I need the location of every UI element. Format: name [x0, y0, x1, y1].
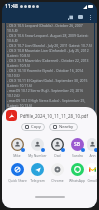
staticText: 10.6.8) — [7, 38, 18, 43]
staticText: 11:48 — [5, 3, 18, 10]
staticText: - OS X 10.11 El Capitan (Gala) - Septemb… — [7, 78, 88, 83]
button[interactable]: WhatsApp — [67, 163, 87, 182]
staticText: Telegram — [30, 178, 45, 182]
staticText: Mike — [13, 153, 21, 157]
button[interactable]: Chrome — [47, 163, 67, 182]
button[interactable]: Nearby — [49, 123, 78, 131]
staticText: Sandra — [72, 153, 83, 157]
button[interactable]: Gmail — [87, 163, 97, 182]
button[interactable]: Quick Share — [7, 163, 27, 182]
staticText: - OS X 10.7 Lion (Barolo) - July 20, 201… — [7, 43, 92, 48]
button[interactable]: Ann — [87, 137, 97, 157]
staticText: Copy — [31, 124, 41, 130]
staticText: Gmail — [87, 178, 97, 182]
staticText: - macOS 10.14 Mojave (Liberty) - Septemb… — [7, 108, 91, 112]
staticText: (Latest: 10.13.6) — [7, 103, 33, 108]
staticText: Pdffile_2024_10_11_11_28_10.pdf — [20, 113, 89, 119]
staticText: WhatsApp — [69, 178, 85, 182]
staticText: 10.10.5) — [7, 73, 20, 78]
staticText: My Number — [28, 153, 47, 157]
staticText: Dad — [54, 153, 61, 157]
staticText: - macOS 10.13 High Sierra (Lobo) - Septe… — [7, 98, 93, 103]
staticText: SB — [74, 141, 81, 148]
staticText: - macOS 10.12 Sierra (Fuji) - September … — [7, 88, 93, 93]
button[interactable]: Comment — [75, 12, 85, 22]
staticText: - OS X 10.5 Leopard (Chablis) - October … — [7, 23, 93, 28]
staticText: - OS X 10.6 Snow Leopard - August 28, 20… — [7, 33, 89, 38]
staticText: (Latest: 10.11.6) — [7, 83, 33, 88]
staticText: Chrome — [51, 178, 64, 182]
button[interactable]: Copy — [21, 123, 45, 131]
button[interactable]: SB — [67, 137, 87, 157]
button[interactable]: Cast — [65, 12, 75, 22]
staticText: (Latest: 10.8.5) — [7, 53, 31, 58]
button[interactable]: Telegram — [27, 163, 47, 182]
staticText: 10.12.6) — [7, 93, 20, 98]
button[interactable]: More options — [85, 12, 95, 22]
staticText: (Latest: 10.9.5) — [7, 63, 31, 68]
button[interactable]: My Number — [27, 137, 47, 157]
staticText: Nearby — [59, 124, 74, 130]
staticText: - OS X 10.9 Mavericks (Cabernet) - Octob… — [7, 58, 89, 63]
staticText: Quick Share — [8, 178, 27, 182]
staticText: - OS X 10.10 Yosemite (Syrah) - October … — [7, 68, 93, 73]
button[interactable]: Mike — [7, 137, 27, 157]
button[interactable]: Dad — [47, 137, 67, 157]
staticText: 10.5.8) — [7, 28, 18, 33]
staticText: - OS X 10.8 Mountain Lion (Zinfandel) - … — [7, 48, 89, 53]
staticText: Ann — [89, 153, 96, 157]
